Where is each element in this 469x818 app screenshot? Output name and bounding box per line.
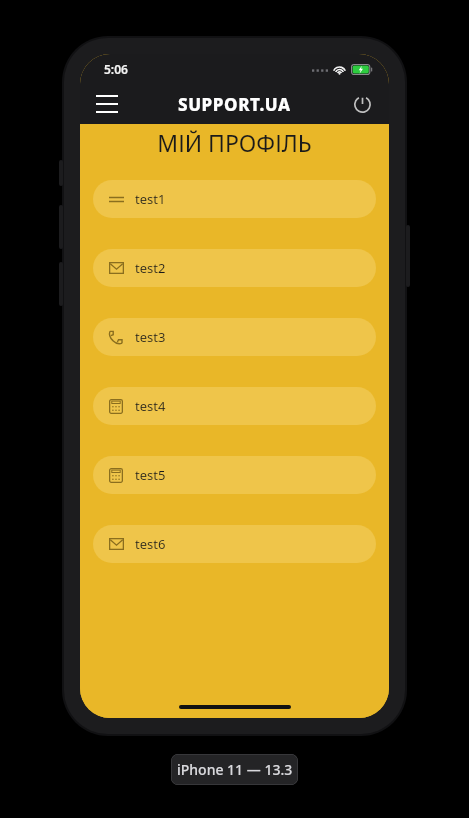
- button[interactable]: test3: [93, 318, 376, 356]
- staticText: SUPPORT.UA: [178, 93, 291, 116]
- staticText: test1: [135, 190, 166, 208]
- staticText: test4: [135, 397, 166, 415]
- button[interactable]: iPhone 11 — 13.3: [171, 754, 298, 785]
- staticText: test5: [135, 466, 166, 484]
- staticText: iPhone 11 — 13.3: [177, 760, 293, 779]
- staticText: test6: [135, 535, 166, 553]
- staticText: 5:06: [104, 61, 128, 77]
- button[interactable]: test2: [93, 249, 376, 287]
- button[interactable]: Menu: [90, 87, 124, 121]
- button[interactable]: test6: [93, 525, 376, 563]
- staticText: test2: [135, 259, 166, 277]
- button[interactable]: Power / Log out: [345, 87, 379, 121]
- staticText: МІЙ ПРОФІЛЬ: [80, 127, 389, 158]
- button[interactable]: test1: [93, 180, 376, 218]
- button[interactable]: test4: [93, 387, 376, 425]
- button[interactable]: test5: [93, 456, 376, 494]
- staticText: test3: [135, 328, 166, 346]
